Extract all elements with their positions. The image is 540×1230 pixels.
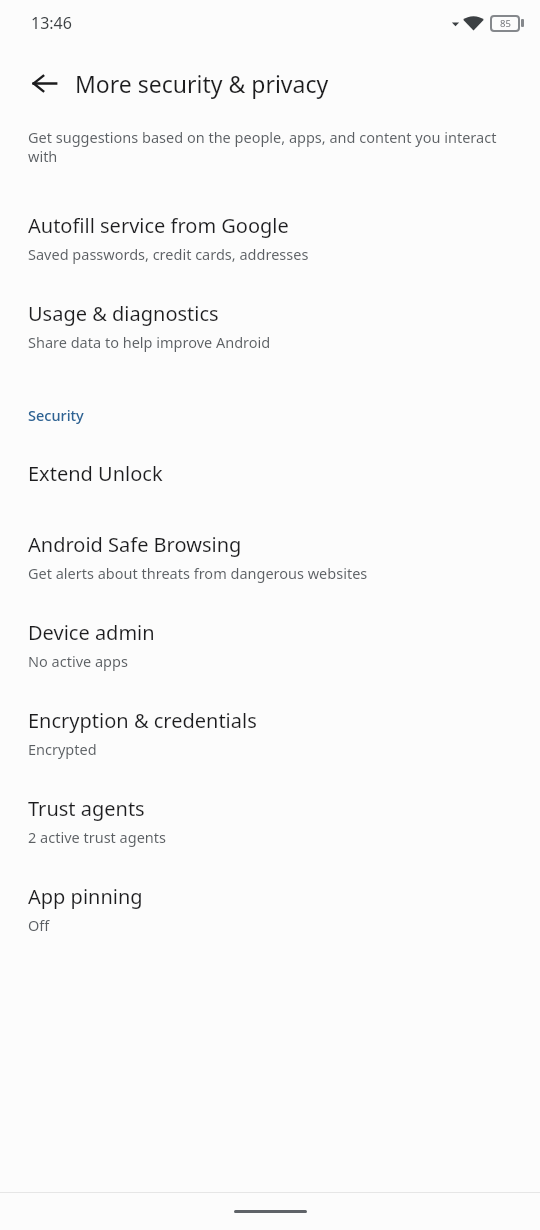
- staticText: Off: [28, 915, 50, 935]
- button[interactable]: Get suggestions based on the people, app…: [0, 120, 540, 194]
- staticText: More security & privacy: [75, 68, 329, 99]
- staticText: Get alerts about threats from dangerous …: [28, 563, 368, 583]
- staticText: Get suggestions based on the people, app…: [28, 127, 516, 166]
- staticText: Encrypted: [28, 739, 97, 759]
- button[interactable]: Back: [18, 57, 70, 109]
- staticText: 85: [500, 17, 511, 30]
- staticText: Device admin: [28, 619, 155, 646]
- button[interactable]: Extend Unlock: [0, 433, 540, 513]
- staticText: Security: [28, 405, 84, 425]
- button[interactable]: Usage & diagnostics: [0, 282, 540, 370]
- staticText: Usage & diagnostics: [28, 300, 219, 327]
- staticText: Encryption & credentials: [28, 707, 257, 734]
- button[interactable]: Trust agents: [0, 777, 540, 865]
- staticText: 2 active trust agents: [28, 827, 166, 847]
- staticText: 13:46: [31, 12, 72, 34]
- button[interactable]: Android Safe Browsing: [0, 513, 540, 601]
- button[interactable]: App pinning: [0, 865, 540, 953]
- button[interactable]: Autofill service from Google: [0, 194, 540, 282]
- staticText: Autofill service from Google: [28, 212, 289, 239]
- staticText: Share data to help improve Android: [28, 332, 271, 352]
- staticText: Android Safe Browsing: [28, 531, 242, 558]
- button[interactable]: Encryption & credentials: [0, 689, 540, 777]
- staticText: Saved passwords, credit cards, addresses: [28, 244, 309, 264]
- staticText: Trust agents: [28, 795, 145, 822]
- staticText: No active apps: [28, 651, 128, 671]
- staticText: App pinning: [28, 883, 143, 910]
- staticText: Extend Unlock: [28, 460, 163, 487]
- button[interactable]: Device admin: [0, 601, 540, 689]
